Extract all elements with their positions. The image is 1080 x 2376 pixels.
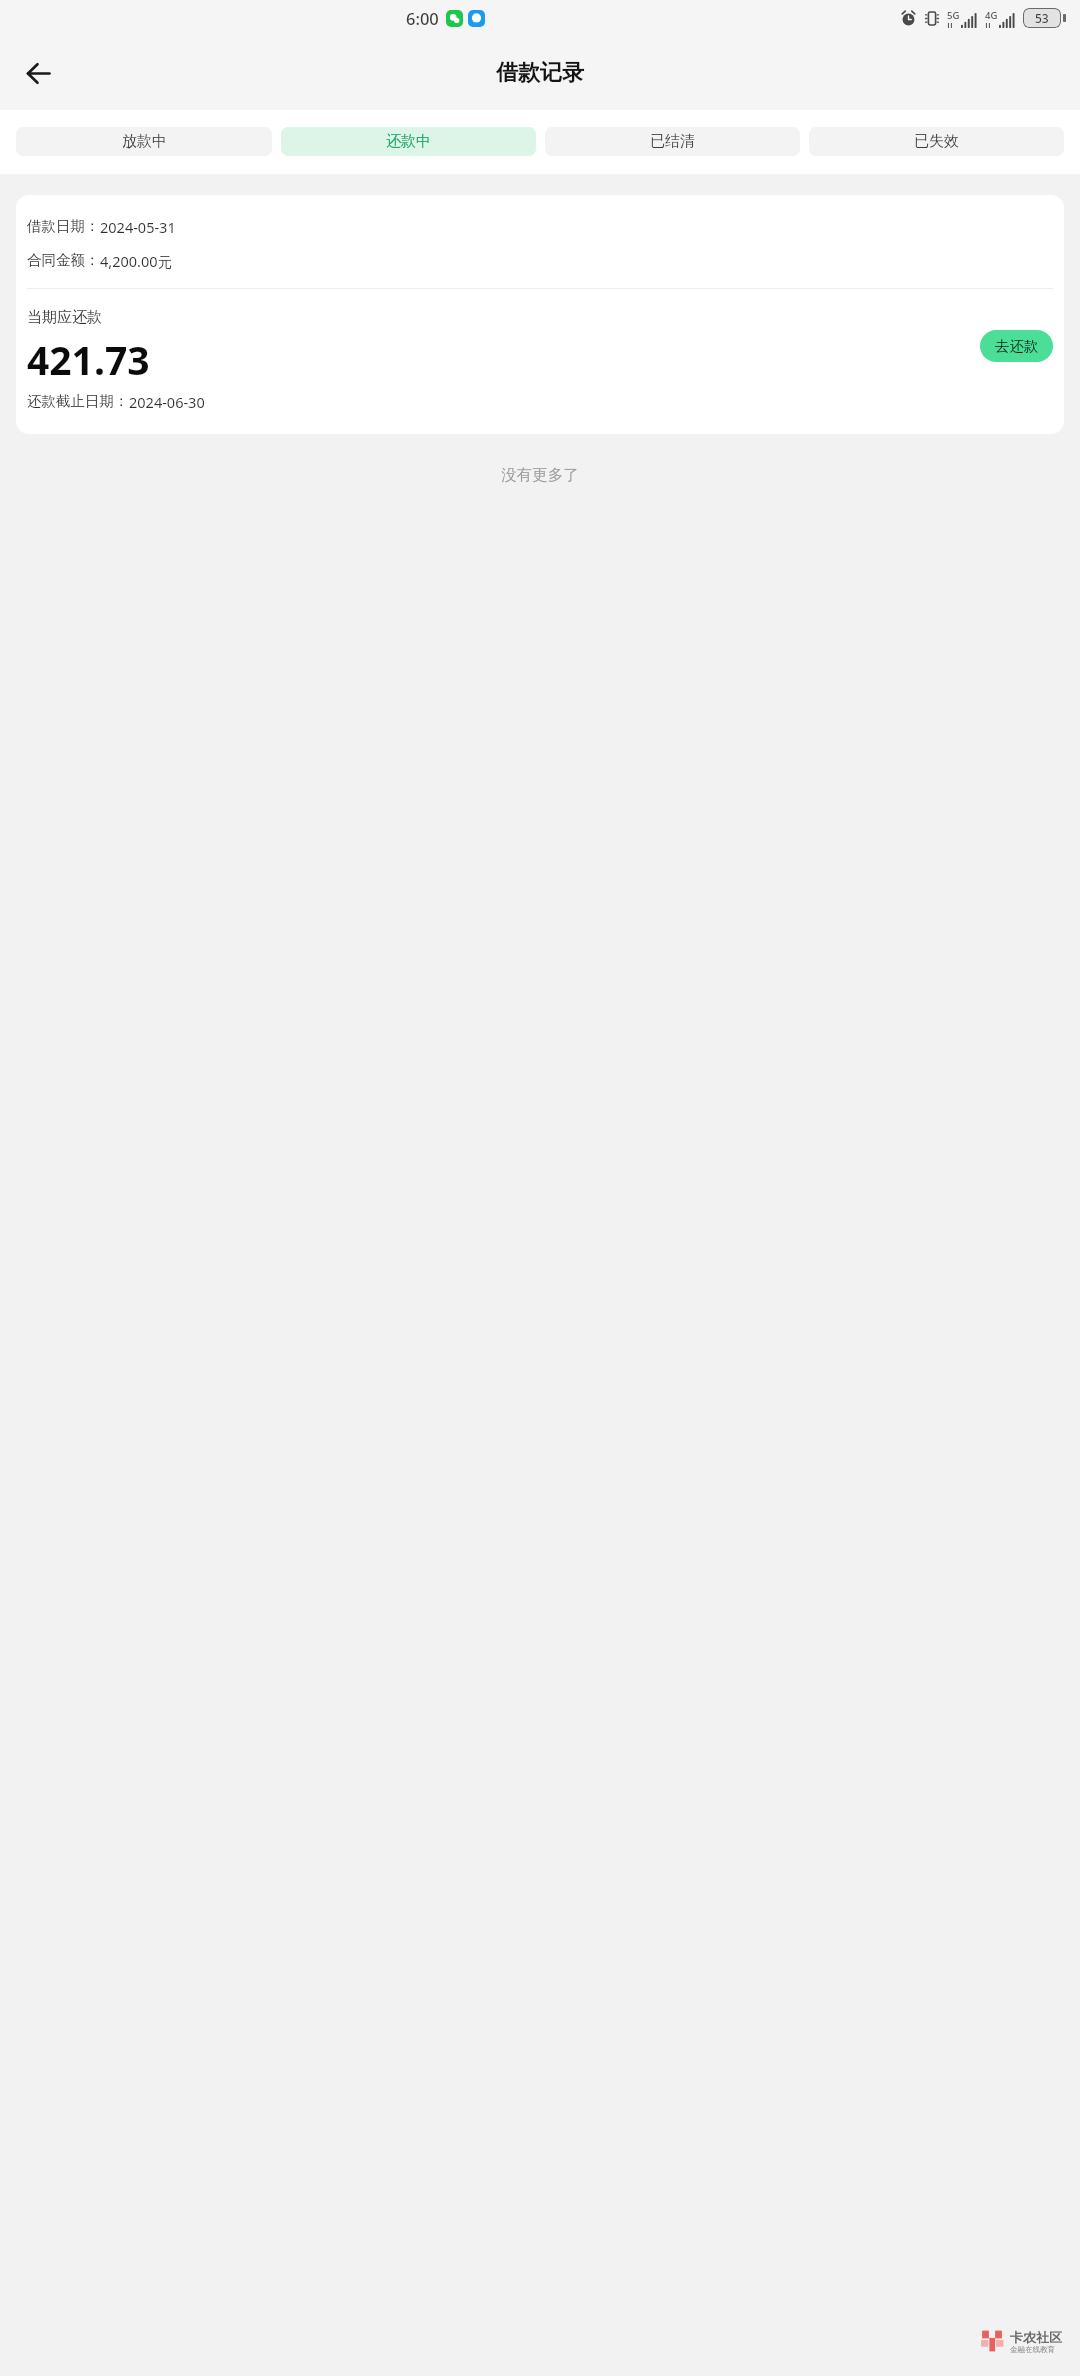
staticText: 2024-05-31	[100, 217, 176, 237]
button[interactable]: 去还款	[980, 330, 1053, 362]
staticText: 2024-06-30	[129, 392, 205, 412]
staticText: 还款中	[386, 132, 431, 151]
button[interactable]: 已结清	[545, 127, 800, 156]
staticText: 当期应还款	[27, 308, 102, 327]
staticText: 5G	[947, 9, 960, 22]
staticText: 放款中	[122, 132, 167, 151]
staticText: 借款记录	[496, 59, 584, 87]
staticText: 合同金额：	[27, 251, 100, 269]
button[interactable]: 已失效	[809, 127, 1064, 156]
staticText: 53	[1035, 10, 1049, 26]
button[interactable]: 还款中	[281, 127, 536, 156]
button[interactable]: 借款日期：	[16, 195, 1064, 434]
staticText: 还款截止日期：	[27, 392, 129, 410]
staticText: 去还款	[995, 337, 1039, 355]
staticText: 4,200.00元	[100, 251, 173, 271]
button[interactable]: Back	[14, 49, 62, 97]
staticText: 6:00	[406, 7, 439, 29]
staticText: 借款日期：	[27, 217, 100, 235]
staticText: 421.73	[27, 333, 150, 386]
staticText: 没有更多了	[0, 465, 1080, 485]
button[interactable]: 放款中	[16, 127, 272, 156]
staticText: 4G	[985, 9, 998, 22]
staticText: 金融在线教育	[1010, 2345, 1055, 2354]
staticText: 已结清	[650, 132, 695, 151]
staticText: 卡农社区	[1010, 2329, 1062, 2345]
staticText: 已失效	[914, 132, 959, 151]
